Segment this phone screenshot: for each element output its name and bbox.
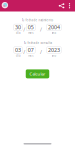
staticText: Tu fecha de nacimiento: [21, 18, 53, 22]
staticText: día: [16, 54, 20, 57]
button[interactable]: Inicio: [0, 2, 8, 9]
staticText: /: [40, 26, 42, 33]
staticText: 2004: [48, 24, 60, 31]
staticText: mes: [28, 54, 33, 57]
staticText: 05: [28, 24, 34, 31]
staticText: Calcular: [29, 71, 45, 76]
staticText: 30: [15, 24, 21, 31]
staticText: Tu fecha de consulta: [23, 41, 51, 45]
staticText: año: [51, 31, 56, 35]
staticText: /: [23, 48, 25, 56]
button[interactable]: Compartir: [57, 3, 66, 9]
staticText: /: [23, 26, 25, 33]
staticText: 03: [15, 46, 21, 53]
button[interactable]: Más opciones: [66, 3, 73, 9]
staticText: mes: [28, 31, 33, 35]
staticText: día: [16, 31, 20, 35]
staticText: /: [40, 48, 42, 56]
staticText: año: [51, 54, 56, 57]
staticText: 07: [28, 46, 34, 53]
staticText: 2023: [48, 46, 60, 53]
button[interactable]: Calcular: [26, 69, 49, 78]
